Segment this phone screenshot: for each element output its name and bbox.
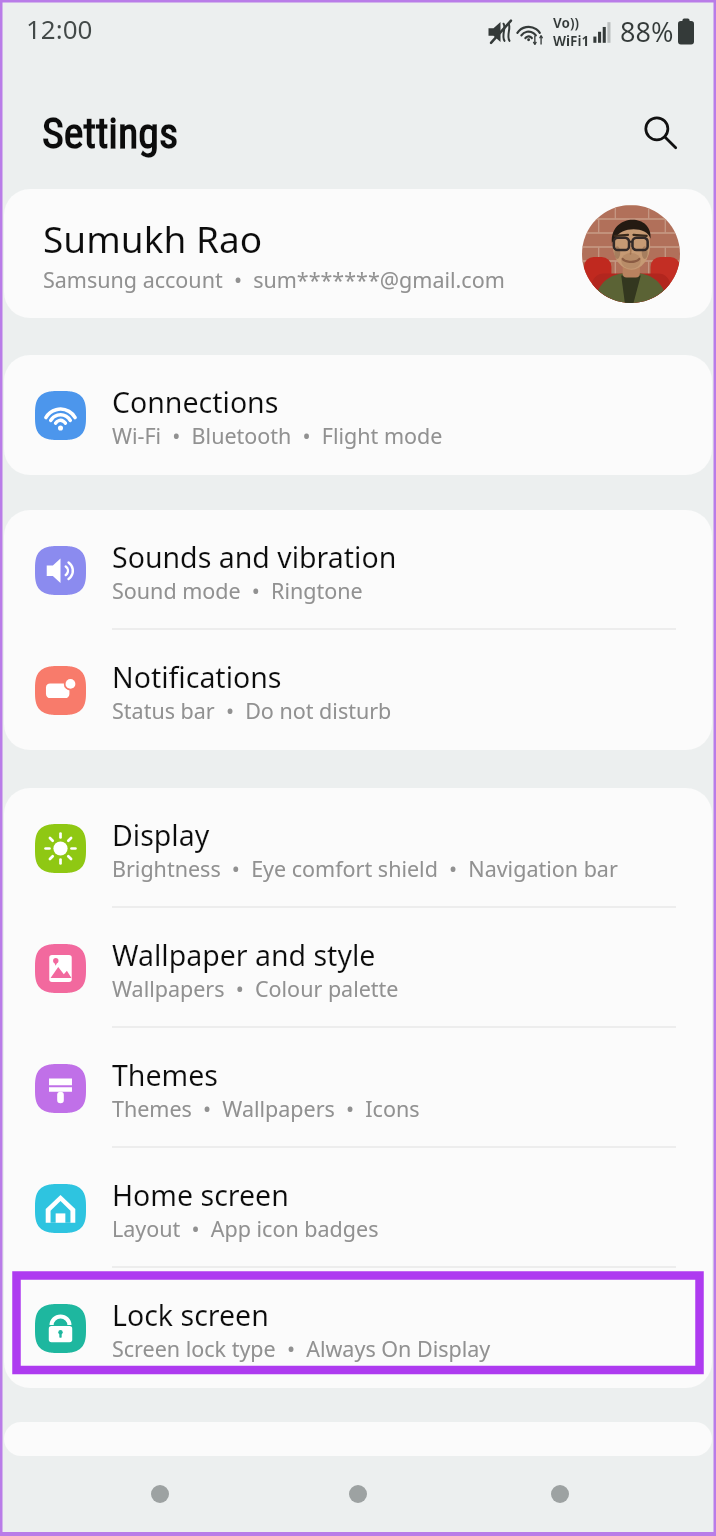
staticText: 12:00 (26, 11, 93, 46)
staticText: Wi-Fi • Bluetooth • Flight mode (112, 421, 443, 450)
staticText: Brightness • Eye comfort shield • Naviga… (112, 854, 618, 883)
button[interactable]: Display (4, 788, 712, 908)
button[interactable]: Home (326, 1462, 390, 1526)
staticText: Layout • App icon badges (112, 1214, 379, 1243)
button[interactable]: Home screen (4, 1148, 712, 1268)
staticText: Themes (112, 1056, 218, 1095)
staticText: Lock screen (112, 1296, 269, 1335)
staticText: Home screen (112, 1176, 289, 1215)
staticText: WiFi1 (553, 32, 590, 50)
button[interactable]: Search (629, 101, 693, 165)
staticText: Themes • Wallpapers • Icons (112, 1094, 420, 1123)
staticText: Notifications (112, 658, 282, 697)
button[interactable]: Themes (4, 1028, 712, 1148)
staticText: Wallpaper and style (112, 936, 376, 975)
staticText: Vo)) (553, 14, 580, 32)
staticText: 88% (620, 13, 674, 50)
button[interactable]: Sounds and vibration (4, 510, 712, 630)
staticText: Settings (42, 109, 179, 158)
button[interactable]: Sumukh Rao (4, 189, 712, 318)
staticText: Screen lock type • Always On Display (112, 1334, 491, 1363)
staticText: Display (112, 816, 210, 855)
button[interactable]: Wallpaper and style (4, 908, 712, 1028)
staticText: Sumukh Rao (43, 213, 263, 263)
staticText: Sounds and vibration (112, 538, 397, 577)
button[interactable]: Connections (4, 355, 712, 475)
staticText: Wallpapers • Colour palette (112, 974, 399, 1003)
button[interactable]: Notifications (4, 630, 712, 750)
button[interactable]: Lock screen (4, 1268, 712, 1388)
staticText: Sound mode • Ringtone (112, 576, 363, 605)
button[interactable]: Recents (128, 1462, 192, 1526)
button[interactable]: Back (528, 1462, 592, 1526)
staticText: Samsung account • sum*******@gmail.com (43, 265, 505, 294)
staticText: Connections (112, 383, 279, 422)
staticText: Status bar • Do not disturb (112, 696, 392, 725)
